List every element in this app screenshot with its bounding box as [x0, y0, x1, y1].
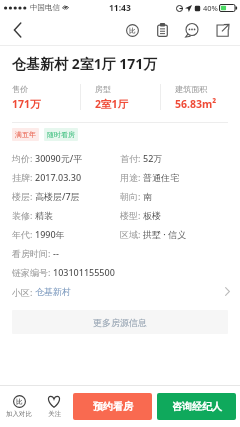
- button[interactable]: 咨询经纪人: [157, 393, 236, 420]
- staticText: 更多房源信息: [93, 317, 147, 328]
- staticText: 装修:: [12, 209, 35, 221]
- staticText: 关注: [48, 410, 61, 418]
- button[interactable]: Compare: [120, 18, 144, 42]
- staticText: 随时看房: [47, 130, 75, 139]
- staticText: 拱墅 · 信义: [143, 228, 187, 240]
- staticText: 看房时间:: [12, 247, 53, 259]
- staticText: 40%: [203, 3, 218, 13]
- staticText: 预约看房: [93, 400, 133, 413]
- staticText: 链家编号:: [12, 266, 53, 278]
- staticText: 中国电信: [30, 3, 60, 12]
- staticText: 56.83m²: [175, 97, 217, 111]
- staticText: 楼型:: [120, 209, 143, 221]
- button[interactable]: 比: [0, 386, 38, 427]
- staticText: 比: [129, 27, 136, 35]
- staticText: 103101155500: [53, 266, 115, 278]
- staticText: 首付:: [120, 152, 143, 164]
- button[interactable]: Chat: [180, 18, 204, 42]
- staticText: 朝向:: [120, 190, 143, 202]
- button[interactable]: 更多房源信息: [12, 310, 228, 334]
- staticText: 仓基新村 2室1厅 171万: [12, 54, 158, 73]
- staticText: 高楼层/7层: [35, 190, 80, 202]
- staticText: 咨询经纪人: [172, 400, 222, 413]
- staticText: 比: [16, 398, 23, 406]
- staticText: 均价:: [12, 152, 35, 164]
- staticText: 楼层:: [12, 190, 35, 202]
- staticText: 精装: [35, 210, 53, 221]
- button[interactable]: Notes: [150, 18, 174, 42]
- staticText: 满五年: [15, 130, 36, 139]
- staticText: 171万: [12, 97, 41, 111]
- staticText: 小区:: [12, 286, 35, 298]
- staticText: 板楼: [143, 210, 161, 221]
- button[interactable]: Share: [210, 18, 234, 42]
- staticText: 52万: [143, 152, 163, 164]
- staticText: 1990年: [35, 228, 65, 240]
- staticText: --: [53, 247, 59, 259]
- button[interactable]: 小区:: [0, 281, 240, 302]
- staticText: 用途:: [120, 171, 143, 183]
- staticText: 普通住宅: [143, 172, 179, 183]
- staticText: 售价: [12, 84, 28, 94]
- staticText: 挂牌:: [12, 171, 35, 183]
- staticText: 加入对比: [6, 410, 32, 418]
- staticText: 30090元/平: [35, 152, 83, 164]
- staticText: 仓基新村: [35, 286, 71, 297]
- staticText: 2017.03.30: [35, 171, 82, 183]
- staticText: 房型: [95, 84, 111, 94]
- button[interactable]: Back: [6, 18, 30, 42]
- staticText: 年代:: [12, 228, 35, 240]
- button[interactable]: 预约看房: [73, 393, 152, 420]
- staticText: 区域:: [120, 228, 143, 240]
- staticText: 南: [143, 191, 152, 202]
- staticText: 建筑面积: [175, 84, 207, 94]
- button[interactable]: 关注: [38, 386, 70, 427]
- staticText: 11:43: [109, 2, 131, 14]
- staticText: 2室1厅: [95, 97, 129, 111]
